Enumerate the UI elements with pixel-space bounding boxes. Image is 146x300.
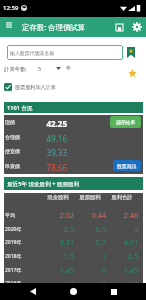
staticText: 2016年	[5, 280, 42, 287]
staticText: 年	[66, 65, 72, 72]
button[interactable]: Settings	[130, 20, 144, 34]
staticText: 股票股利	[74, 194, 106, 201]
button[interactable]: 2016年	[4, 276, 143, 290]
staticText: 平均	[5, 212, 42, 218]
staticText: 現價	[5, 119, 15, 125]
staticText: 合理價	[5, 134, 20, 140]
staticText: 2020年	[5, 226, 42, 233]
staticText: 輸入股票代號或名稱	[10, 50, 55, 56]
button[interactable]: 2017年	[4, 263, 143, 277]
staticText: 1	[74, 251, 106, 261]
staticText: 78.66	[34, 162, 67, 173]
staticText: 現金股利	[42, 194, 74, 201]
button[interactable]: Years dropdown	[52, 63, 64, 73]
button[interactable]: Back	[24, 283, 41, 300]
staticText: 定存股: 合理價試算	[22, 22, 86, 32]
button[interactable]: 2020年	[4, 222, 143, 236]
staticText: 4.01	[106, 237, 138, 247]
staticText: 股票資訊	[117, 163, 137, 169]
staticText: 39.33	[34, 147, 67, 158]
button[interactable]: 1101 台泥	[4, 102, 143, 113]
staticText: 1.5	[42, 251, 74, 261]
button[interactable]: 現價	[4, 115, 143, 130]
staticText: 1.45	[106, 265, 138, 275]
button[interactable]: 輸入股票代號或名稱	[7, 45, 123, 60]
button[interactable]: 平均	[4, 208, 143, 222]
staticText: 3	[106, 224, 138, 234]
staticText: 0.44	[74, 210, 106, 220]
staticText: 1.2	[42, 278, 74, 288]
button[interactable]: 2019年	[4, 235, 143, 249]
staticText: 2017年	[5, 267, 42, 274]
staticText: 計算年數:	[4, 65, 28, 72]
staticText: 2.46	[106, 210, 138, 220]
button[interactable]: Favourite	[126, 67, 139, 80]
button[interactable]: 股票股利加入計算	[4, 82, 56, 92]
staticText: 昂貴價	[5, 163, 20, 169]
staticText: 2.5	[42, 224, 74, 234]
staticText: 2019年	[5, 239, 42, 246]
staticText: 1.45	[42, 265, 74, 275]
button[interactable]: 2018年	[4, 249, 143, 263]
button[interactable]: 股票資訊	[113, 160, 141, 171]
staticText: 2018年	[5, 253, 42, 260]
staticText: 2.5	[106, 251, 138, 261]
staticText: 0.7	[74, 237, 106, 247]
staticText: 0	[74, 265, 106, 275]
button[interactable]: 最近5年 現金股利 + 股票股利	[4, 177, 143, 190]
staticText: 儲存結果	[116, 119, 136, 125]
staticText: 1.2	[106, 278, 138, 288]
button[interactable]: Recent apps	[105, 283, 122, 300]
button[interactable]: 昂貴價	[4, 159, 143, 174]
staticText: 42.25	[34, 118, 67, 129]
staticText: 1101 台泥	[7, 104, 33, 112]
button[interactable]: Home	[65, 283, 82, 300]
staticText: 3.31	[42, 237, 74, 247]
button[interactable]: Menu	[1, 17, 17, 33]
staticText: 股利合計	[106, 194, 138, 201]
staticText: 49.16	[34, 133, 67, 144]
staticText: 最近5年 現金股利 + 股票股利	[7, 180, 80, 188]
staticText: 0.5	[74, 224, 106, 234]
staticText: 0	[74, 278, 106, 288]
button[interactable]: 合理價	[4, 130, 143, 145]
button[interactable]: 儲存結果	[110, 116, 141, 128]
button[interactable]: Bookmark	[126, 46, 135, 59]
staticText: 股票股利加入計算	[15, 84, 56, 90]
staticText: 5	[38, 65, 42, 72]
staticText: 2.02	[42, 210, 74, 220]
button[interactable]: Save	[112, 20, 126, 34]
staticText: 12:59	[3, 4, 19, 12]
staticText: 便宜價	[5, 148, 20, 154]
button[interactable]: 便宜價	[4, 144, 143, 159]
